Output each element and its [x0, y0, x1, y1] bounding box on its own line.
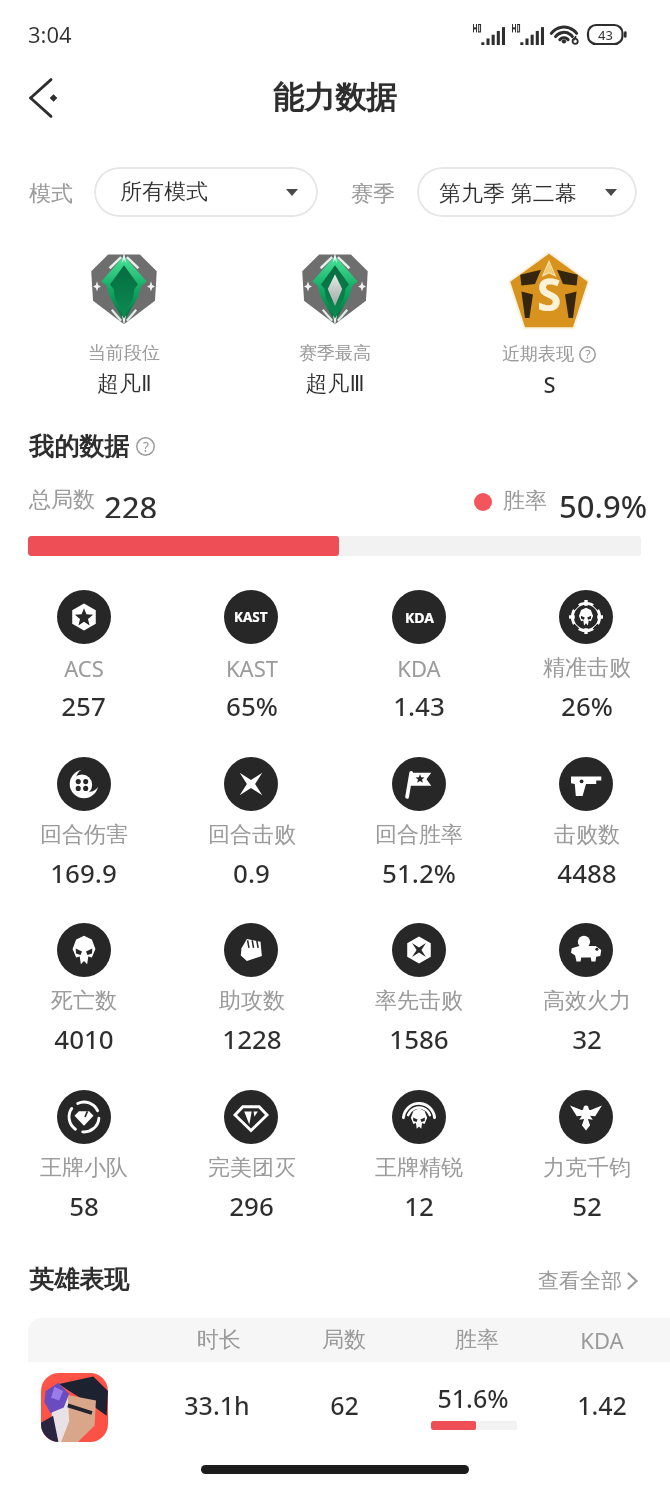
staticText: 王牌精锐 — [375, 1154, 463, 1182]
staticText: 胜率 — [455, 1326, 499, 1354]
staticText: 王牌小队 — [40, 1154, 128, 1182]
staticText: 击败数 — [554, 821, 620, 849]
button[interactable] — [503, 1080, 670, 1225]
staticText: 我的数据 — [29, 431, 129, 461]
staticText: 4010 — [54, 1021, 114, 1056]
button[interactable]: Back — [11, 65, 77, 131]
staticText: KAST — [234, 608, 268, 626]
staticText: 33.1h — [184, 1388, 250, 1422]
staticText: KDA — [405, 608, 434, 627]
staticText: 能力数据 — [273, 78, 397, 117]
staticText: 65% — [226, 688, 278, 723]
staticText: 12 — [404, 1188, 434, 1223]
staticText: 257 — [61, 688, 106, 723]
staticText: 0.9 — [233, 855, 270, 890]
button[interactable] — [503, 913, 670, 1058]
button[interactable]: 第九季 第二幕 — [417, 167, 637, 217]
button[interactable] — [168, 913, 336, 1058]
staticText: 率先击败 — [375, 987, 463, 1015]
staticText: 51.6% — [437, 1381, 509, 1415]
staticText: ? — [585, 346, 591, 363]
staticText: 62 — [330, 1388, 359, 1422]
staticText: 超凡Ⅲ — [305, 370, 365, 398]
button[interactable] — [168, 747, 336, 892]
staticText: 时长 — [197, 1326, 241, 1354]
staticText: 228 — [104, 486, 158, 518]
button[interactable] — [503, 747, 670, 892]
staticText: 回合伤害 — [40, 821, 128, 849]
button[interactable] — [335, 747, 503, 892]
staticText: 赛季最高 — [299, 342, 371, 365]
staticText: 局数 — [322, 1326, 366, 1354]
button[interactable] — [503, 580, 670, 725]
staticText: 第九季 第二幕 — [439, 177, 577, 207]
staticText: 1.42 — [577, 1388, 627, 1422]
staticText: ACS — [64, 653, 104, 683]
staticText: 回合击败 — [208, 821, 296, 849]
button[interactable] — [335, 1080, 503, 1225]
button[interactable]: 所有模式 — [94, 167, 318, 217]
staticText: 296 — [229, 1188, 274, 1223]
staticText: 当前段位 — [88, 342, 160, 365]
staticText: 3:04 — [28, 19, 72, 49]
staticText: 完美团灭 — [208, 1154, 296, 1182]
staticText: 超凡Ⅱ — [97, 370, 152, 398]
button[interactable] — [28, 1362, 670, 1480]
staticText: 43 — [598, 26, 613, 44]
staticText: 4488 — [557, 855, 617, 890]
staticText: 近期表现 — [502, 343, 574, 366]
staticText: 1228 — [222, 1021, 282, 1056]
staticText: 所有模式 — [120, 178, 208, 206]
staticText: 1586 — [389, 1021, 449, 1056]
staticText: 精准击败 — [543, 654, 631, 682]
staticText: S — [543, 369, 556, 399]
button[interactable] — [0, 1080, 168, 1225]
staticText: ? — [143, 437, 149, 456]
staticText: 英雄表现 — [29, 1264, 129, 1295]
staticText: 查看全部 — [538, 1268, 622, 1294]
staticText: 169.9 — [50, 855, 117, 890]
staticText: 总局数 — [29, 486, 95, 514]
staticText: 32 — [572, 1021, 602, 1056]
button[interactable] — [0, 580, 168, 725]
staticText: S — [537, 264, 562, 324]
staticText: 50.9% — [559, 485, 648, 519]
button[interactable] — [0, 747, 168, 892]
staticText: 1.43 — [393, 688, 445, 723]
button[interactable] — [168, 1080, 336, 1225]
staticText: 高效火力 — [543, 987, 631, 1015]
button[interactable] — [168, 580, 336, 725]
button[interactable] — [0, 913, 168, 1058]
staticText: 赛季 — [351, 180, 395, 208]
staticText: KAST — [226, 653, 278, 683]
staticText: 胜率 — [503, 487, 547, 515]
staticText: 助攻数 — [219, 987, 285, 1015]
button[interactable] — [335, 913, 503, 1058]
staticText: 力克千钧 — [543, 1154, 631, 1182]
staticText: 回合胜率 — [375, 821, 463, 849]
staticText: 模式 — [29, 180, 73, 208]
button[interactable]: 查看全部 — [538, 1266, 638, 1296]
staticText: KDA — [580, 1325, 624, 1355]
staticText: KDA — [397, 653, 441, 683]
staticText: 52 — [572, 1188, 602, 1223]
button[interactable] — [335, 580, 503, 725]
staticText: 58 — [69, 1188, 99, 1223]
staticText: 26% — [561, 688, 613, 723]
staticText: 51.2% — [382, 855, 456, 890]
staticText: 死亡数 — [51, 987, 117, 1015]
